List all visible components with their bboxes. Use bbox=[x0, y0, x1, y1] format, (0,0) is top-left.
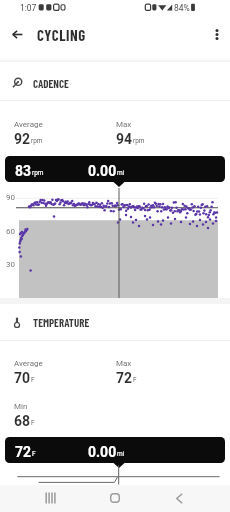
staticText: 70 bbox=[14, 370, 31, 386]
button[interactable]: Home bbox=[103, 486, 127, 510]
staticText: 0.00 bbox=[88, 444, 117, 460]
staticText: F bbox=[133, 376, 137, 384]
staticText: Average bbox=[14, 120, 43, 129]
staticText: 83 bbox=[15, 163, 32, 179]
button[interactable]: Recent apps bbox=[38, 486, 62, 510]
staticText: rpm bbox=[133, 137, 145, 145]
button[interactable]: TEMPERATURE bbox=[0, 307, 230, 337]
staticText: 84% bbox=[174, 3, 190, 13]
staticText: 92 bbox=[14, 131, 31, 147]
staticText: F bbox=[31, 376, 35, 384]
button[interactable]: Back bbox=[167, 486, 191, 510]
staticText: 68 bbox=[14, 413, 31, 429]
staticText: F bbox=[31, 419, 35, 427]
staticText: mi bbox=[117, 169, 125, 177]
staticText: 1:07 bbox=[20, 3, 37, 13]
staticText: rpm bbox=[32, 169, 44, 177]
staticText: TEMPERATURE bbox=[33, 316, 90, 329]
staticText: 72 bbox=[15, 444, 32, 460]
staticText: Max bbox=[116, 120, 132, 129]
staticText: 94 bbox=[116, 131, 133, 147]
staticText: Min bbox=[14, 402, 28, 411]
staticText: 60 bbox=[6, 227, 15, 236]
button[interactable]: CADENCE bbox=[0, 68, 230, 98]
staticText: 0.00 bbox=[88, 163, 117, 179]
staticText: 30 bbox=[6, 260, 15, 269]
staticText: CYCLING bbox=[37, 26, 86, 44]
staticText: mi bbox=[117, 450, 125, 458]
staticText: 72 bbox=[116, 370, 133, 386]
button[interactable]: Back bbox=[2, 19, 32, 49]
staticText: CADENCE bbox=[33, 77, 69, 90]
staticText: Max bbox=[116, 359, 132, 368]
staticText: Average bbox=[14, 359, 43, 368]
staticText: 90 bbox=[6, 193, 15, 202]
staticText: rpm bbox=[31, 137, 43, 145]
button[interactable]: More options bbox=[202, 19, 230, 49]
staticText: F bbox=[32, 450, 36, 458]
